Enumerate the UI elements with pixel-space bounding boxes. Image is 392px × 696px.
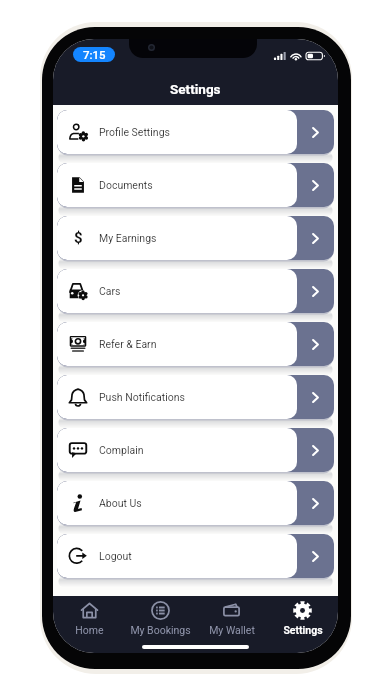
- button[interactable]: $: [57, 216, 334, 260]
- staticText: Home: [75, 624, 104, 636]
- button[interactable]: Logout: [57, 534, 334, 578]
- staticText: Push Notifications: [99, 391, 185, 403]
- button[interactable]: My Wallet: [196, 596, 267, 653]
- button[interactable]: About Us: [57, 481, 334, 525]
- staticText: Settings: [170, 81, 221, 97]
- staticText: My Wallet: [209, 624, 255, 636]
- staticText: About Us: [99, 497, 142, 509]
- staticText: Settings: [283, 624, 323, 636]
- staticText: Refer & Earn: [99, 338, 157, 350]
- staticText: My Earnings: [99, 232, 157, 244]
- staticText: Profile Settings: [99, 126, 170, 138]
- button[interactable]: Cars: [57, 269, 334, 313]
- button[interactable]: Refer & Earn: [57, 322, 334, 366]
- button[interactable]: Home: [53, 596, 125, 653]
- staticText: My Bookings: [130, 624, 191, 636]
- staticText: Logout: [99, 550, 132, 562]
- button[interactable]: Complain: [57, 428, 334, 472]
- staticText: $: [74, 229, 83, 247]
- staticText: 7:15: [83, 48, 106, 61]
- button[interactable]: Documents: [57, 163, 334, 207]
- staticText: Cars: [99, 285, 121, 297]
- staticText: Documents: [99, 179, 153, 191]
- button[interactable]: Push Notifications: [57, 375, 334, 419]
- button[interactable]: My Bookings: [125, 596, 196, 653]
- button[interactable]: Settings: [267, 596, 338, 653]
- staticText: Complain: [99, 444, 144, 456]
- button[interactable]: Profile Settings: [57, 110, 334, 154]
